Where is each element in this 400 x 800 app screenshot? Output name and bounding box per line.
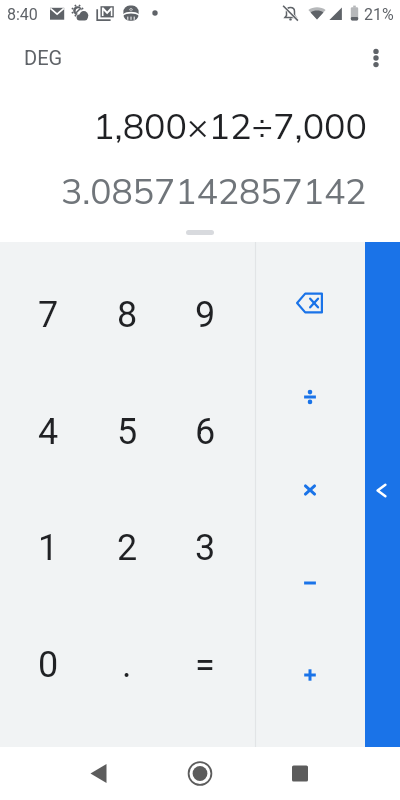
- staticText: 1,800×12÷7,000: [93, 103, 368, 148]
- staticText: 3: [195, 527, 216, 569]
- button[interactable]: =: [163, 607, 247, 723]
- staticText: 8:40: [7, 5, 38, 24]
- staticText: 6: [195, 411, 216, 453]
- staticText: 0: [38, 644, 59, 686]
- button[interactable]: 2: [85, 490, 169, 606]
- staticText: 7: [38, 294, 59, 336]
- button[interactable]: 8: [85, 257, 169, 373]
- staticText: =: [195, 644, 215, 686]
- staticText: 4: [38, 411, 59, 453]
- button[interactable]: Backspace: [255, 257, 365, 349]
- button[interactable]: 6: [163, 374, 247, 490]
- button[interactable]: 9: [163, 257, 247, 373]
- button[interactable]: Divide: [255, 351, 365, 443]
- button[interactable]: 7: [6, 257, 90, 373]
- button[interactable]: Multiply: [255, 444, 365, 536]
- staticText: 2: [117, 527, 138, 569]
- button[interactable]: Add: [255, 629, 365, 721]
- button[interactable]: 4: [6, 374, 90, 490]
- button[interactable]: Back: [71, 747, 127, 800]
- button[interactable]: 3: [163, 490, 247, 606]
- button[interactable]: 5: [85, 374, 169, 490]
- staticText: 1: [38, 527, 59, 569]
- staticText: 5: [117, 411, 138, 453]
- button[interactable]: Show advanced pad: [365, 242, 400, 747]
- button[interactable]: 1: [6, 490, 90, 606]
- button[interactable]: DEG: [10, 37, 77, 78]
- staticText: 8: [117, 294, 138, 336]
- button[interactable]: Subtract: [255, 537, 365, 629]
- staticText: 21%: [364, 5, 394, 24]
- button[interactable]: More options: [352, 34, 400, 82]
- staticText: 3.0857142857142: [61, 168, 367, 212]
- staticText: 9: [195, 294, 216, 336]
- button[interactable]: Recent apps: [272, 747, 328, 800]
- staticText: .: [122, 644, 132, 686]
- button[interactable]: 0: [6, 607, 90, 723]
- button[interactable]: Home: [172, 747, 228, 800]
- staticText: DEG: [24, 46, 63, 69]
- button[interactable]: .: [85, 607, 169, 723]
